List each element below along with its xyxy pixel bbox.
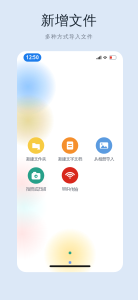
button[interactable]: 从相册导入 — [87, 137, 121, 163]
staticText: 新建文件夹 — [26, 156, 46, 162]
staticText: 新建文字文档 — [58, 156, 82, 162]
staticText: 多种方式导入文件 — [45, 33, 93, 40]
button[interactable]: 新建文字文档 — [53, 137, 87, 163]
button[interactable]: WiFi传输 — [53, 167, 87, 193]
staticText: WiFi传输 — [62, 186, 78, 192]
staticText: 从相册导入 — [94, 156, 114, 162]
staticText: 12:50 — [26, 54, 39, 61]
staticText: 拍照或扫描 — [26, 186, 46, 192]
button[interactable]: 拍照或扫描 — [19, 167, 53, 193]
button[interactable]: 新建文件夹 — [19, 137, 53, 163]
staticText: 新增文件 — [41, 12, 97, 29]
